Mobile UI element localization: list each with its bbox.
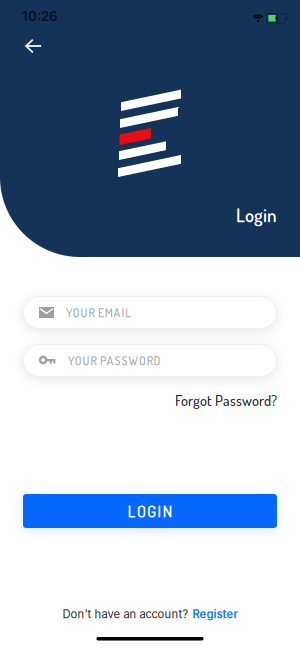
staticText: 10:26: [22, 8, 58, 24]
staticText: D: [154, 353, 161, 368]
staticText: L: [125, 305, 131, 320]
staticText: N: [162, 500, 172, 522]
staticText: W: [128, 353, 138, 368]
staticText: Register: [192, 607, 237, 621]
staticText: I: [121, 305, 124, 320]
staticText: L: [128, 500, 136, 522]
staticText: O: [75, 353, 82, 368]
button[interactable]: Forgot Password?: [175, 391, 277, 409]
staticText: G: [147, 500, 156, 522]
staticText: R: [147, 353, 153, 368]
staticText: M: [105, 305, 113, 320]
staticText: P: [100, 353, 106, 368]
staticText: Y: [68, 353, 74, 368]
button[interactable]: Y: [23, 296, 277, 329]
staticText: U: [81, 305, 88, 320]
button[interactable]: Register: [192, 607, 237, 621]
button[interactable]: L: [23, 494, 277, 528]
staticText: A: [114, 305, 121, 320]
staticText: A: [107, 353, 114, 368]
staticText: Forgot Password?: [175, 391, 277, 409]
staticText: Login: [236, 203, 277, 227]
staticText: I: [157, 500, 161, 522]
staticText: E: [98, 305, 104, 320]
button[interactable]: Y: [23, 344, 277, 377]
staticText: O: [139, 353, 146, 368]
staticText: R: [90, 353, 96, 368]
staticText: U: [83, 353, 90, 368]
staticText: O: [73, 305, 80, 320]
staticText: S: [115, 353, 121, 368]
staticText: Y: [66, 305, 72, 320]
staticText: O: [137, 500, 146, 522]
staticText: S: [121, 353, 127, 368]
staticText: R: [88, 305, 94, 320]
button[interactable]: [0, 0, 52, 61]
staticText: Don't have an account?: [62, 607, 188, 621]
